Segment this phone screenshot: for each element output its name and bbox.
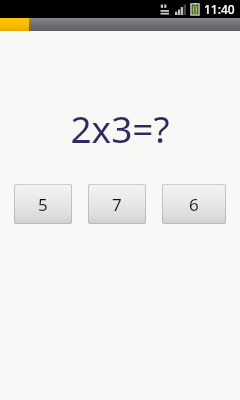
staticText: 2x3=? [70,103,170,153]
button[interactable]: 6 [162,184,226,224]
staticText: 7 [112,193,122,216]
staticText: 5 [38,193,48,216]
button[interactable]: 5 [14,184,72,224]
staticText: 11:40 [204,1,235,17]
staticText: 6 [189,193,199,216]
button[interactable]: 7 [88,184,146,224]
